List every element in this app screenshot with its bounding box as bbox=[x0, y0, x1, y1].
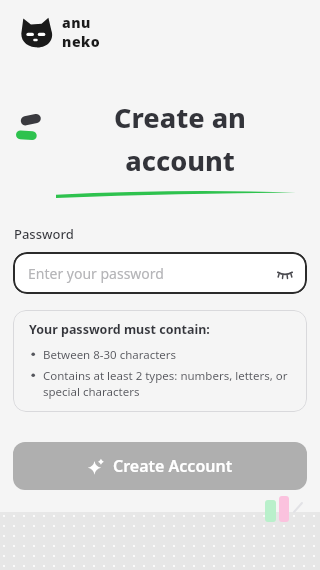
button[interactable]: anu neko logo bbox=[18, 13, 101, 51]
staticText: Create Account bbox=[113, 455, 233, 477]
staticText: anu bbox=[62, 13, 91, 32]
other: anu neko logo bbox=[18, 15, 56, 49]
staticText: Contains at least 2 types: numbers, lett… bbox=[43, 368, 293, 399]
staticText: Your password must contain: bbox=[29, 321, 210, 338]
button[interactable]: Create Account bbox=[13, 442, 307, 490]
staticText: Create an bbox=[114, 99, 246, 136]
staticText: Password bbox=[14, 225, 74, 243]
staticText: neko bbox=[62, 32, 101, 51]
staticText: account bbox=[125, 142, 235, 179]
staticText: Between 8-30 characters bbox=[43, 347, 177, 363]
button[interactable]: Show password bbox=[274, 262, 296, 284]
staticText: Enter your password bbox=[28, 264, 274, 283]
button[interactable]: Enter your password bbox=[13, 252, 307, 294]
